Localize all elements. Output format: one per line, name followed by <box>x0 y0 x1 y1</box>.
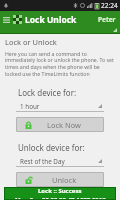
staticText: Lock Now <box>47 120 82 130</box>
button[interactable]: Rest of the Day <box>16 156 104 167</box>
staticText: Peter <box>98 15 116 24</box>
button[interactable]: Open navigation drawer <box>0 11 13 28</box>
staticText: 22:24 <box>101 1 118 10</box>
button[interactable]: 1 hour <box>16 101 104 112</box>
staticText: Lock device for: <box>18 87 77 98</box>
staticText: Lock :: Success <box>38 187 82 195</box>
button[interactable]: Unlock <box>16 172 104 187</box>
button[interactable]: Lock Now <box>16 117 104 132</box>
button[interactable]: Peter <box>98 11 116 28</box>
staticText: Lock or Unlock <box>5 37 57 47</box>
button[interactable]: Lock :: Success <box>4 187 116 200</box>
staticText: 1 hour <box>20 102 40 111</box>
staticText: Rest of the Day <box>20 157 65 166</box>
staticText: Here you can send a command to immediate… <box>5 50 114 78</box>
staticText: Mon Sep 30 22:28:47 AEST 2013 <box>15 196 106 200</box>
staticText: Lock Unlock <box>25 14 77 26</box>
staticText: Unlock device for: <box>18 142 85 153</box>
staticText: Unlock <box>52 175 77 185</box>
